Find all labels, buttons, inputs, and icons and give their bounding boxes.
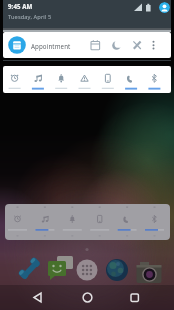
button[interactable]: Appointment xyxy=(3,32,171,58)
button[interactable] xyxy=(120,66,143,93)
button[interactable] xyxy=(77,287,98,308)
button[interactable] xyxy=(27,287,48,308)
button[interactable] xyxy=(91,32,111,58)
button[interactable] xyxy=(3,66,27,93)
button[interactable] xyxy=(74,66,97,93)
button[interactable] xyxy=(75,258,99,282)
button[interactable] xyxy=(46,253,75,283)
button[interactable] xyxy=(105,258,129,282)
button[interactable] xyxy=(136,261,163,284)
button[interactable] xyxy=(124,287,145,308)
button[interactable] xyxy=(131,32,151,58)
button[interactable] xyxy=(16,254,43,283)
button[interactable] xyxy=(159,2,170,13)
button[interactable] xyxy=(143,66,166,93)
button[interactable] xyxy=(27,66,51,93)
staticText: Appointment xyxy=(31,42,71,50)
button[interactable] xyxy=(51,66,74,93)
staticText: Tuesday, April 5 xyxy=(8,13,52,21)
button[interactable] xyxy=(151,32,171,58)
button[interactable] xyxy=(111,32,131,58)
button[interactable] xyxy=(97,66,120,93)
staticText: 9:45 AM xyxy=(8,2,33,10)
